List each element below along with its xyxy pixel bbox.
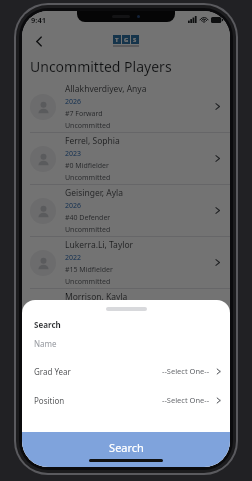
- button[interactable]: Lukerra.Li, Taylor: [22, 237, 230, 289]
- button[interactable]: Position: [22, 393, 230, 407]
- button[interactable]: Morrison, Kayla: [22, 289, 230, 341]
- staticText: S: [133, 36, 137, 44]
- staticText: Allakhverdiyev, Anya: [65, 83, 147, 95]
- staticText: Grad Year: [34, 366, 71, 377]
- staticText: Uncommitted Players: [30, 57, 172, 76]
- staticText: G: [124, 36, 129, 44]
- staticText: Name: [34, 338, 57, 349]
- staticText: #0 Midfielder: [65, 161, 109, 171]
- staticText: Position: [34, 395, 65, 406]
- staticText: Morrison, Kayla: [65, 291, 128, 303]
- button[interactable]: Search: [22, 432, 230, 467]
- button[interactable]: Back: [26, 28, 52, 54]
- staticText: Uncommitted: [65, 225, 111, 235]
- staticText: #15 Midfielder: [65, 265, 113, 275]
- button[interactable]: Grad Year: [22, 364, 230, 378]
- button[interactable]: Geisinger, Ayla: [22, 185, 230, 237]
- staticText: Lukerra.Li, Taylor: [65, 239, 134, 251]
- staticText: 2023: [65, 149, 82, 159]
- staticText: 2026: [65, 201, 82, 211]
- button[interactable]: Allakhverdiyev, Anya: [22, 81, 230, 133]
- staticText: Geisinger, Ayla: [65, 187, 124, 199]
- staticText: 9:41: [31, 15, 46, 25]
- staticText: Uncommitted: [65, 121, 111, 131]
- staticText: --Select One--: [162, 366, 210, 376]
- staticText: Search: [34, 319, 61, 330]
- staticText: --Select One--: [162, 395, 210, 405]
- staticText: Uncommitted: [65, 173, 111, 183]
- staticText: Search: [109, 440, 144, 455]
- staticText: 2022: [65, 253, 82, 263]
- button[interactable]: Name: [22, 337, 230, 350]
- staticText: #7 Forward: [65, 109, 103, 119]
- staticText: #40 Defender: [65, 213, 111, 223]
- staticText: Ferrel, Sophia: [65, 135, 120, 147]
- button[interactable]: Ferrel, Sophia: [22, 133, 230, 185]
- staticText: T: [115, 36, 119, 44]
- staticText: Uncommitted: [65, 277, 111, 287]
- staticText: 2026: [65, 97, 82, 107]
